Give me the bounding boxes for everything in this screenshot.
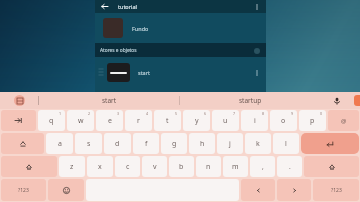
- staticText: ?123: [331, 187, 342, 194]
- button[interactable]: y: [183, 110, 210, 131]
- button[interactable]: n: [196, 156, 221, 177]
- staticText: @: [341, 117, 347, 125]
- staticText: e: [108, 116, 112, 126]
- button[interactable]: b: [169, 156, 194, 177]
- staticText: 9: [291, 111, 294, 116]
- button[interactable]: x: [87, 156, 113, 177]
- staticText: ?123: [18, 187, 29, 194]
- staticText: 6: [204, 111, 207, 116]
- staticText: s: [87, 139, 91, 149]
- button[interactable]: l: [273, 133, 299, 154]
- button[interactable]: c: [115, 156, 140, 177]
- staticText: start: [138, 69, 150, 76]
- staticText: w: [78, 116, 84, 126]
- staticText: 8: [262, 111, 265, 116]
- staticText: d: [115, 139, 120, 149]
- button[interactable]: w: [67, 110, 94, 131]
- button[interactable]: o: [270, 110, 297, 131]
- button[interactable]: v: [142, 156, 167, 177]
- button[interactable]: Symbols: [313, 179, 359, 201]
- staticText: b: [179, 162, 184, 172]
- staticText: 1: [59, 111, 62, 116]
- staticText: 5: [175, 111, 178, 116]
- button[interactable]: u: [212, 110, 239, 131]
- staticText: i: [254, 116, 256, 126]
- button[interactable]: Add object: [252, 46, 261, 55]
- staticText: u: [223, 116, 228, 126]
- button[interactable]: a: [46, 133, 73, 154]
- button[interactable]: Caps lock: [1, 133, 44, 154]
- staticText: l: [285, 139, 287, 149]
- staticText: r: [137, 116, 140, 126]
- button[interactable]: m: [223, 156, 248, 177]
- button[interactable]: Emoji: [48, 179, 84, 201]
- button[interactable]: Fundo: [95, 13, 266, 43]
- button[interactable]: Shift: [304, 156, 359, 177]
- button[interactable]: p: [299, 110, 326, 131]
- staticText: t: [166, 116, 169, 126]
- button[interactable]: t: [154, 110, 181, 131]
- button[interactable]: f: [133, 133, 159, 154]
- staticText: 0: [320, 111, 323, 116]
- button[interactable]: startup: [180, 92, 320, 109]
- staticText: startup: [239, 96, 262, 105]
- staticText: start: [102, 96, 117, 105]
- button[interactable]: k: [245, 133, 271, 154]
- button[interactable]: z: [59, 156, 85, 177]
- button[interactable]: Object options: [251, 67, 262, 78]
- button[interactable]: Tab: [1, 110, 36, 131]
- staticText: 3: [117, 111, 120, 116]
- button[interactable]: Right: [277, 179, 311, 201]
- staticText: z: [70, 162, 74, 172]
- button[interactable]: i: [241, 110, 268, 131]
- staticText: v: [153, 162, 157, 172]
- button[interactable]: g: [161, 133, 187, 154]
- button[interactable]: Voice input: [320, 92, 354, 109]
- staticText: y: [195, 116, 199, 126]
- button[interactable]: Back: [99, 1, 110, 12]
- button[interactable]: q: [38, 110, 65, 131]
- staticText: 2: [88, 111, 91, 116]
- staticText: 7: [233, 111, 236, 116]
- staticText: Fundo: [132, 25, 149, 32]
- button[interactable]: start: [95, 57, 266, 87]
- staticText: p: [310, 116, 315, 126]
- staticText: f: [145, 139, 148, 149]
- staticText: c: [126, 162, 130, 172]
- button[interactable]: Symbols: [1, 179, 46, 201]
- button[interactable]: d: [104, 133, 131, 154]
- staticText: 4: [146, 111, 149, 116]
- staticText: .: [289, 162, 291, 171]
- staticText: n: [206, 162, 211, 172]
- staticText: m: [232, 162, 239, 172]
- staticText: j: [229, 139, 231, 149]
- button[interactable]: s: [75, 133, 102, 154]
- staticText: h: [200, 139, 205, 149]
- button[interactable]: r: [125, 110, 152, 131]
- button[interactable]: At sign: [328, 110, 359, 131]
- button[interactable]: start: [39, 92, 179, 109]
- button[interactable]: j: [217, 133, 243, 154]
- staticText: a: [58, 139, 62, 149]
- button[interactable]: h: [189, 133, 215, 154]
- staticText: ,: [262, 162, 264, 171]
- staticText: g: [172, 139, 177, 149]
- staticText: Atores e objetos: [100, 47, 137, 54]
- staticText: k: [256, 139, 260, 149]
- button[interactable]: Keyboard settings: [0, 92, 38, 109]
- button[interactable]: .: [277, 156, 302, 177]
- button[interactable]: Shift: [1, 156, 57, 177]
- button[interactable]: Enter: [301, 133, 359, 154]
- button[interactable]: ,: [250, 156, 275, 177]
- staticText: o: [281, 116, 286, 126]
- button[interactable]: e: [96, 110, 123, 131]
- button[interactable]: More options: [251, 1, 262, 12]
- staticText: tutorial: [118, 3, 137, 10]
- staticText: q: [49, 116, 54, 126]
- button[interactable]: Left: [241, 179, 275, 201]
- staticText: x: [98, 162, 102, 172]
